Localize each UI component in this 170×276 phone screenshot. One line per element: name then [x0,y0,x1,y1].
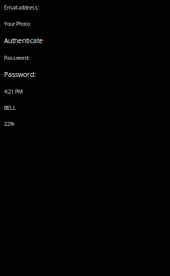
staticText: Email address: [4,4,39,11]
staticText: BELL [4,104,16,111]
staticText: Your Photo [4,20,30,27]
staticText: 22% [4,120,14,127]
staticText: Password: [4,54,29,61]
staticText: Authenticate [4,36,43,45]
staticText: 4:21 PM [4,88,23,95]
staticText: Password: [4,70,36,79]
